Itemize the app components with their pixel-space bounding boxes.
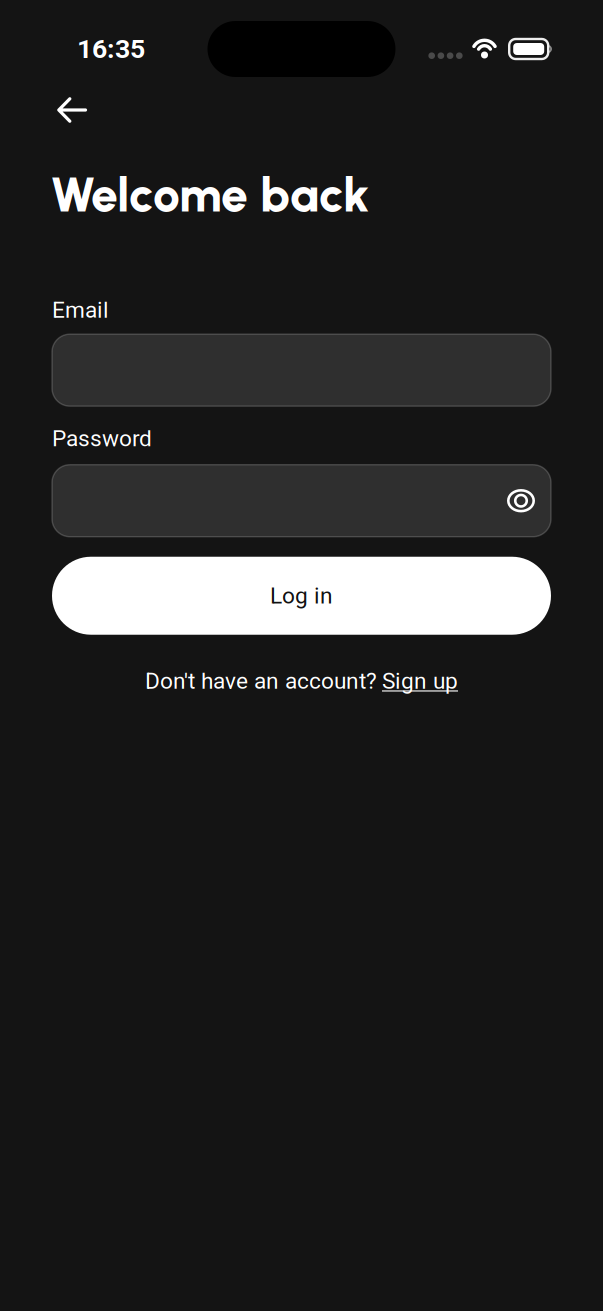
staticText: Sign up xyxy=(382,668,458,694)
staticText: Password xyxy=(52,425,152,452)
button[interactable]: Log in xyxy=(52,557,551,635)
staticText: Welcome back xyxy=(50,166,369,224)
staticText: Don't have an account? xyxy=(145,668,377,694)
button[interactable]: Show password xyxy=(491,465,551,537)
staticText: 16:35 xyxy=(77,33,145,65)
staticText: Email xyxy=(52,297,109,323)
staticText: Log in xyxy=(270,582,333,609)
button[interactable]: Sign up xyxy=(382,668,458,694)
button[interactable]: Back xyxy=(40,88,104,132)
